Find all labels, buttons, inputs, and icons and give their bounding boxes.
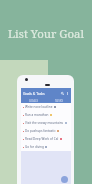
staticText: Go for diving [25,145,44,149]
staticText: Read Deep Work of Cal [25,137,59,141]
button[interactable]: Write novel outline [21,103,71,111]
staticText: Goals & Tasks [23,91,45,96]
button[interactable]: GOALS [21,98,46,103]
staticText: List Your Goal [8,26,84,42]
button[interactable]: Visit the snowy mountains [21,119,71,127]
staticText: Do pushups fantastic [25,129,56,133]
staticText: Visit the snowy mountains [25,121,64,125]
button[interactable]: Go for diving [21,143,71,151]
button[interactable]: Run a marathon [21,111,71,119]
button[interactable]: Search [60,91,65,96]
staticText: TASKS [55,99,63,103]
staticText: GOALS [29,99,38,103]
button[interactable]: Do pushups fantastic [21,127,71,135]
staticText: Write novel outline [25,105,53,109]
staticText: Run a marathon [25,113,49,117]
button[interactable]: TASKS [46,98,71,103]
button[interactable]: Add goal [61,176,68,183]
button[interactable]: Read Deep Work of Cal [21,135,71,143]
button[interactable]: More options [65,91,70,96]
